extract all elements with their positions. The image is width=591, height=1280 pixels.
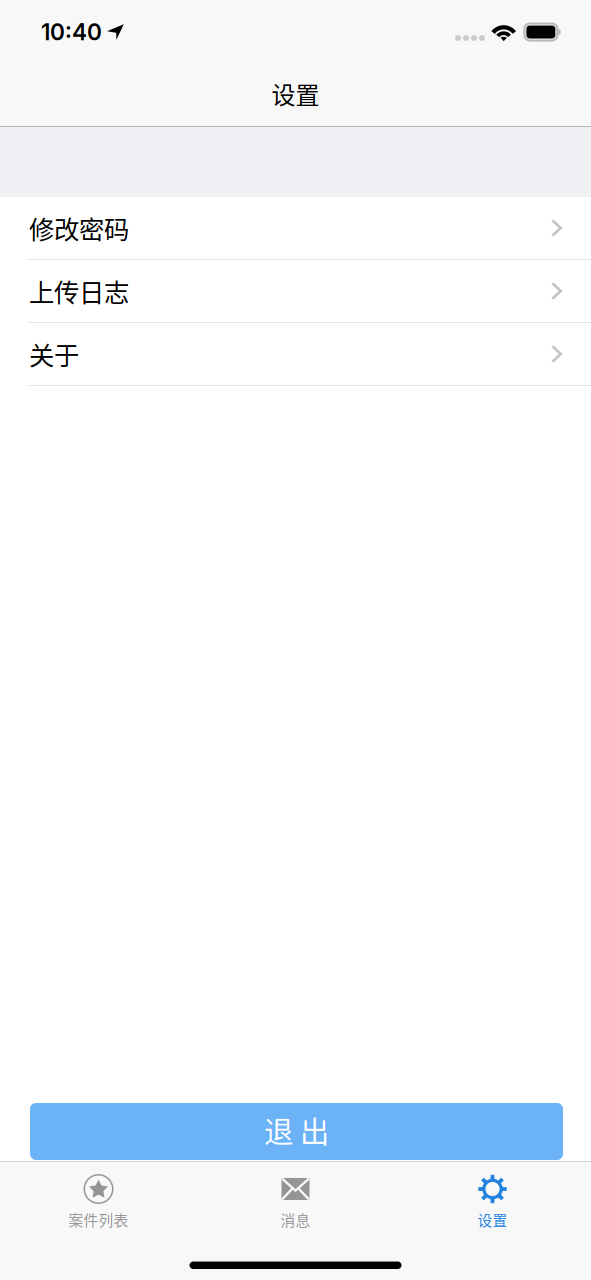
button[interactable]: 上传日志 [0,260,591,323]
button[interactable]: 关于 [0,323,591,386]
staticText: 修改密码 [29,210,129,246]
staticText: 设置 [477,1209,507,1230]
button[interactable]: 退 出 [30,1103,563,1160]
staticText: 退 出 [264,1109,329,1151]
staticText: 消息 [280,1209,310,1230]
button[interactable]: 案件列表 [0,1161,197,1238]
staticText: 关于 [29,336,79,372]
staticText: 案件列表 [68,1209,128,1230]
staticText: 上传日志 [29,273,129,309]
staticText: 设置 [271,76,319,111]
button[interactable]: 设置 [394,1161,591,1238]
button[interactable]: 消息 [197,1161,394,1238]
button[interactable]: 修改密码 [0,197,591,260]
staticText: 10:40 [41,18,102,46]
